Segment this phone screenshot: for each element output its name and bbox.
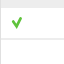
button[interactable]: Done <box>0 8 64 38</box>
